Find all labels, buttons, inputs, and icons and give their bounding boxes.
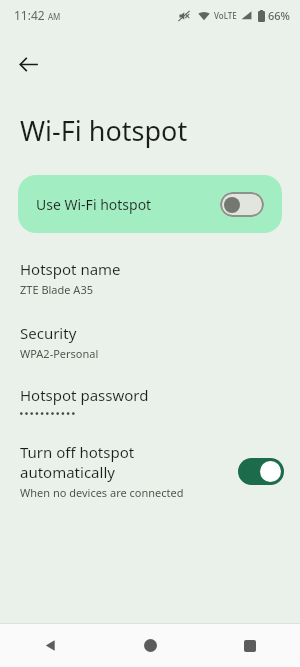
- button[interactable]: Security: [0, 323, 300, 361]
- button[interactable]: Hotspot name: [0, 259, 300, 297]
- staticText: Security: [20, 323, 77, 343]
- button[interactable]: Recent apps: [200, 624, 300, 667]
- staticText: Hotspot password: [20, 385, 149, 405]
- button[interactable]: Back: [6, 42, 50, 86]
- button[interactable]: Hotspot password: [0, 385, 300, 418]
- staticText: Turn off hotspot automatically: [20, 442, 135, 482]
- button[interactable]: Turn off hotspot automatically: [0, 442, 300, 500]
- staticText: AM: [48, 11, 61, 22]
- staticText: When no devices are connected: [20, 485, 184, 500]
- button[interactable]: Back: [0, 624, 100, 667]
- button[interactable]: Home: [100, 624, 200, 667]
- staticText: Use Wi-Fi hotspot: [36, 195, 152, 214]
- staticText: 11:42: [14, 7, 45, 23]
- staticText: ZTE Blade A35: [20, 282, 93, 297]
- staticText: 66%: [268, 8, 290, 23]
- staticText: WPA2-Personal: [20, 346, 99, 361]
- staticText: Wi-Fi hotspot: [20, 112, 188, 149]
- staticText: Hotspot name: [20, 259, 121, 279]
- button[interactable]: Use Wi-Fi hotspot: [18, 175, 282, 233]
- staticText: VoLTE: [214, 10, 237, 21]
